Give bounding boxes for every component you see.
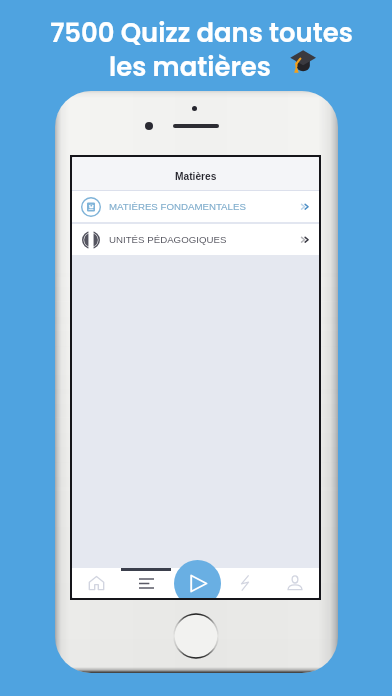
button[interactable]: Quick quiz — [221, 568, 270, 598]
button[interactable]: Subjects — [122, 568, 172, 598]
staticText: MATIÈRES FONDAMENTALES — [109, 201, 246, 212]
staticText: 7500 Quizz dans toutes — [50, 15, 353, 51]
button[interactable]: Profile — [270, 568, 319, 598]
staticText: Matières — [175, 171, 217, 182]
button[interactable]: Play quiz — [174, 560, 221, 598]
staticText: UNITÉS PÉDAGOGIQUES — [109, 234, 227, 245]
button[interactable]: UNITÉS PÉDAGOGIQUES — [72, 224, 319, 255]
button[interactable]: MATIÈRES FONDAMENTALES — [72, 191, 319, 222]
button[interactable]: Home — [72, 568, 122, 598]
staticText: les matières — [109, 49, 271, 85]
